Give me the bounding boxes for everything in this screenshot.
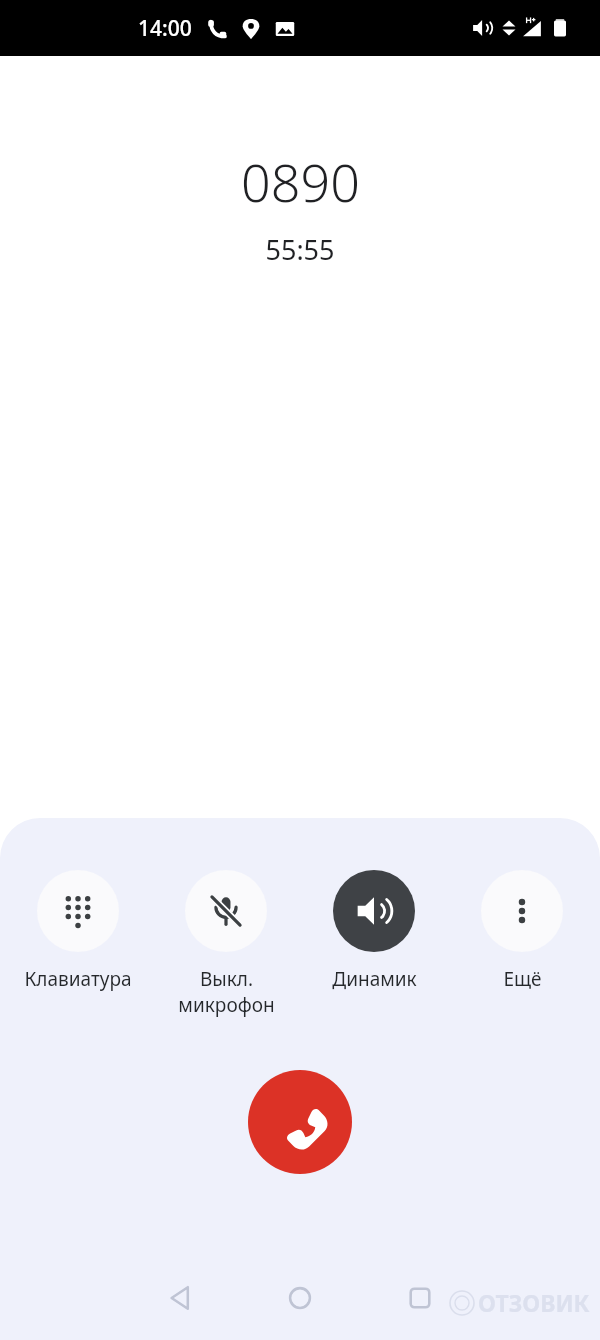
button[interactable]: Recents	[360, 1256, 480, 1340]
staticText: Выкл. микрофон	[178, 966, 275, 1018]
staticText: Ещё	[503, 966, 542, 992]
staticText: Клавиатура	[24, 966, 132, 992]
other: More options	[481, 870, 563, 952]
button[interactable]: Mute microphone	[156, 870, 296, 1018]
staticText: 14:00	[138, 14, 192, 43]
staticText: 55:55	[265, 231, 335, 268]
button[interactable]: Back	[120, 1256, 240, 1340]
other: Dialpad	[37, 870, 119, 952]
staticText: 0890	[241, 146, 360, 217]
button[interactable]: Speaker	[304, 870, 444, 992]
staticText: ОТЗОВИК	[478, 1287, 590, 1318]
other: Speaker	[333, 870, 415, 952]
other: Mute microphone	[185, 870, 267, 952]
button[interactable]: Dialpad	[8, 870, 148, 992]
staticText: Динамик	[332, 966, 417, 992]
button[interactable]: End call	[248, 1070, 352, 1174]
button[interactable]: More options	[452, 870, 592, 992]
button[interactable]: Home	[240, 1256, 360, 1340]
